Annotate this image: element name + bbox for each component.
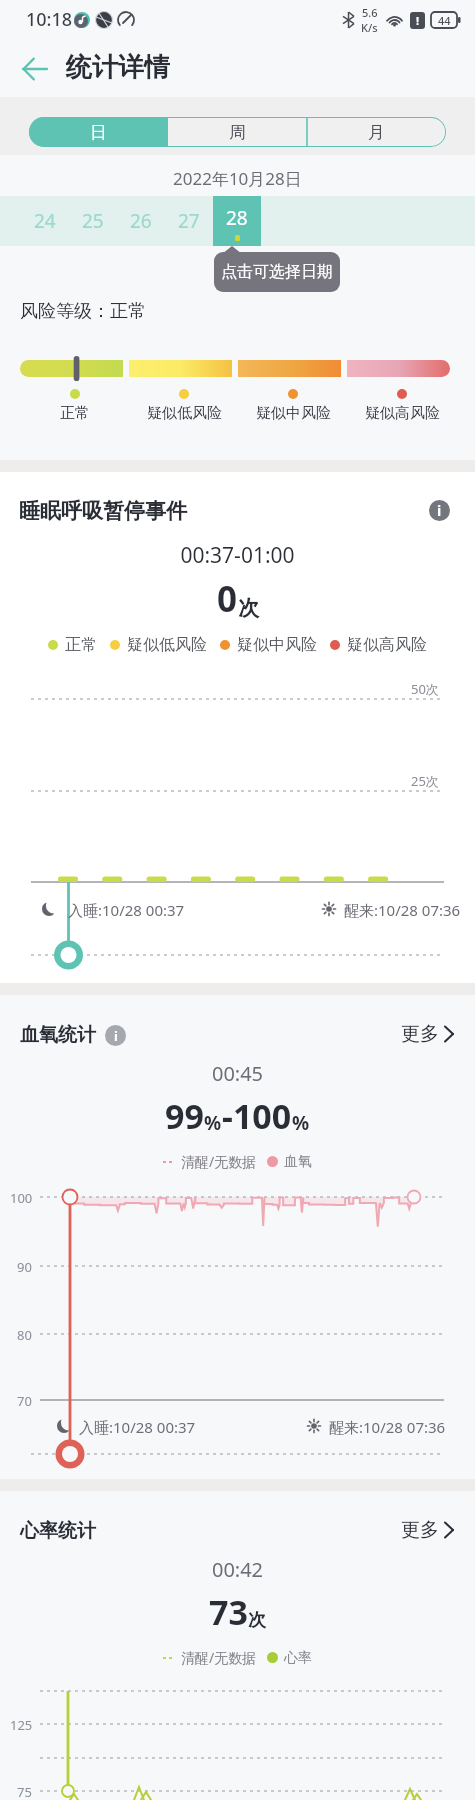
staticText: 清醒/无数据 [181, 1152, 257, 1171]
staticText: 正常 [60, 404, 90, 423]
staticText: 44 [438, 13, 451, 28]
staticText: 00:45 [0, 1060, 475, 1087]
staticText: 心率 [284, 1649, 312, 1667]
staticText: 日 [90, 122, 107, 143]
button[interactable]: 24 [21, 196, 69, 246]
staticText: i [114, 1027, 118, 1045]
staticText: 入睡:10/28 00:37 [79, 1417, 196, 1437]
staticText: 50次 [411, 680, 439, 698]
button[interactable]: Info [105, 1025, 126, 1046]
staticText: 75 [17, 1783, 32, 1800]
staticText: 醒来:10/28 07:36 [329, 1417, 446, 1437]
staticText: 统计详情 [66, 51, 170, 84]
staticText: 正常 [65, 635, 97, 655]
staticText: 2022年10月28日 [173, 167, 302, 190]
staticText: 10:18 [26, 7, 73, 32]
button[interactable]: 27 [165, 196, 213, 246]
staticText: 血氧统计 [20, 1023, 96, 1047]
button[interactable]: 25 [69, 196, 117, 246]
staticText: 26 [130, 208, 152, 234]
staticText: 73 [209, 1589, 248, 1635]
button[interactable]: Back [11, 45, 59, 93]
button[interactable]: 更多 [401, 1022, 454, 1046]
staticText: 疑似中风险 [237, 635, 317, 655]
button[interactable]: Info [429, 500, 450, 521]
staticText: 血氧 [284, 1153, 312, 1171]
staticText: 周 [229, 122, 246, 143]
staticText: 睡眠呼吸暂停事件 [19, 498, 187, 524]
staticText: 00:42 [0, 1556, 475, 1583]
staticText: 月 [368, 122, 385, 143]
staticText: 清醒/无数据 [181, 1648, 257, 1667]
staticText: 70 [17, 1392, 32, 1410]
staticText: 入睡:10/28 00:37 [68, 900, 185, 920]
staticText: 5.6 [362, 5, 378, 20]
staticText: 99 [165, 1093, 204, 1139]
staticText: 27 [178, 208, 200, 234]
staticText: 25次 [411, 772, 439, 790]
button[interactable]: 月 [307, 117, 446, 147]
button[interactable]: 更多 [401, 1518, 454, 1542]
button[interactable]: 日 [29, 117, 168, 147]
staticText: i [437, 501, 442, 520]
staticText: 心率统计 [20, 1519, 96, 1543]
staticText: 次 [248, 1609, 266, 1632]
staticText: 24 [34, 208, 56, 234]
button[interactable]: 28 [213, 196, 261, 246]
staticText: 疑似中风险 [256, 404, 331, 423]
staticText: 更多 [401, 1022, 439, 1046]
staticText: 28 [226, 205, 248, 231]
staticText: 疑似高风险 [365, 404, 440, 423]
staticText: 00:37-01:00 [0, 541, 475, 570]
staticText: 疑似低风险 [127, 635, 207, 655]
staticText: 90 [17, 1258, 32, 1276]
button[interactable]: 周 [168, 117, 307, 147]
staticText: ! [416, 13, 420, 28]
staticText: 疑似高风险 [347, 635, 427, 655]
staticText: % [204, 1110, 222, 1136]
staticText: 疑似低风险 [147, 404, 222, 423]
button[interactable]: 26 [117, 196, 165, 246]
staticText: 125 [10, 1716, 33, 1734]
staticText: K/s [361, 20, 378, 35]
staticText: 次 [238, 595, 259, 621]
staticText: 醒来:10/28 07:36 [344, 900, 461, 920]
staticText: % [292, 1110, 310, 1136]
staticText: 25 [82, 208, 104, 234]
staticText: 点击可选择日期 [221, 262, 333, 282]
staticText: 80 [17, 1326, 32, 1344]
staticText: 风险等级：正常 [20, 300, 146, 323]
staticText: 100 [10, 1189, 33, 1207]
staticText: -100 [222, 1093, 292, 1139]
staticText: 更多 [401, 1518, 439, 1542]
staticText: 0 [217, 575, 238, 623]
button[interactable]: 点击可选择日期 [214, 252, 340, 292]
